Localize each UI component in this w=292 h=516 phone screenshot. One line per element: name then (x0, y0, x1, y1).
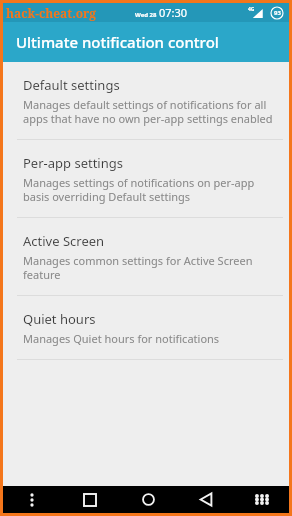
button[interactable]: More options (3, 486, 61, 513)
button[interactable]: Per-app settings (3, 140, 289, 217)
staticText: Wed 28 (135, 11, 157, 19)
staticText: Per-app settings (23, 154, 123, 172)
button[interactable]: All apps (235, 486, 289, 513)
staticText: Active Screen (23, 232, 105, 250)
staticText: Default settings (23, 76, 120, 94)
staticText: 07:30 (159, 5, 188, 20)
staticText: Manages common settings for Active Scree… (23, 253, 277, 282)
button[interactable]: Ultimate notification control (3, 22, 289, 62)
staticText: Manages Quiet hours for notifications (23, 331, 220, 346)
staticText: 93 (274, 9, 281, 17)
staticText: Manages default settings of notification… (23, 97, 277, 126)
button[interactable]: Quiet hours (3, 296, 289, 359)
button[interactable]: Default settings (3, 62, 289, 139)
staticText: Manages settings of notifications on per… (23, 175, 277, 204)
button[interactable]: Active Screen (3, 218, 289, 295)
staticText: 4G (248, 6, 255, 13)
button[interactable]: Home (119, 486, 177, 513)
staticText: Quiet hours (23, 310, 96, 328)
staticText: hack-cheat.org (6, 5, 97, 21)
button[interactable]: Recents (61, 486, 119, 513)
staticText: Ultimate notification control (16, 32, 219, 52)
button[interactable]: Back (177, 486, 235, 513)
